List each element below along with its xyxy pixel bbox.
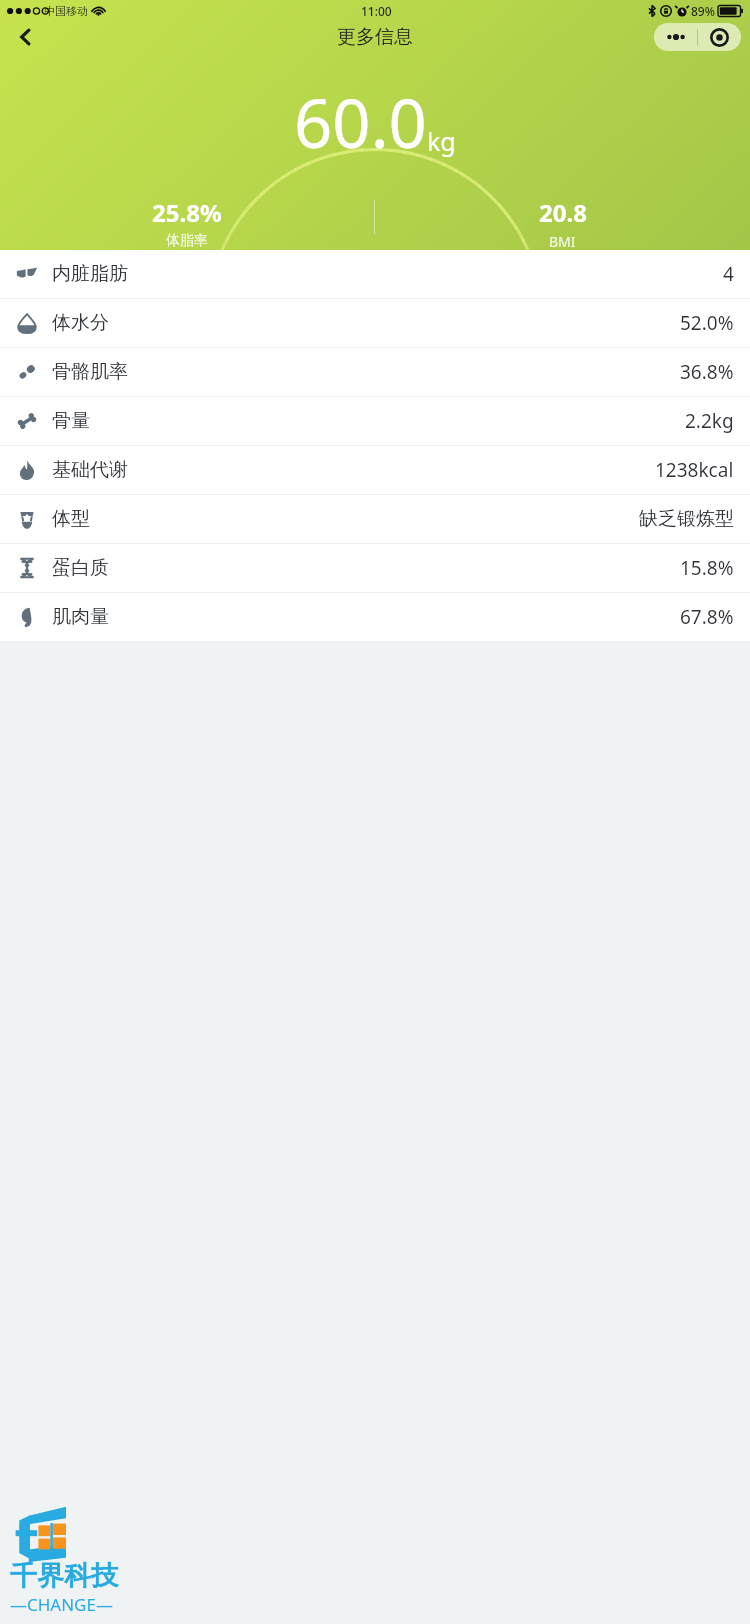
button[interactable]: 体水分 [0, 299, 750, 347]
staticText: 骨量 [52, 409, 90, 433]
button[interactable]: 基础代谢 [0, 446, 750, 494]
staticText: kg [427, 124, 456, 158]
staticText: 2.2kg [685, 408, 734, 434]
button[interactable]: 内脏脂肪 [0, 250, 750, 298]
button[interactable]: 肌肉量 [0, 593, 750, 641]
staticText: 内脏脂肪 [52, 262, 128, 286]
button[interactable]: 骨骼肌率 [0, 348, 750, 396]
staticText: 肌肉量 [52, 605, 109, 629]
staticText: 4 [723, 261, 734, 287]
staticText: BMI [549, 232, 576, 251]
staticText: 千界科技 [10, 1559, 118, 1593]
staticText: 蛋白质 [52, 556, 109, 580]
staticText: 基础代谢 [52, 458, 128, 482]
staticText: 缺乏锻炼型 [639, 507, 734, 531]
staticText: 89% [691, 3, 715, 19]
button[interactable]: 体型 [0, 495, 750, 543]
staticText: 骨骼肌率 [52, 360, 128, 384]
staticText: 体水分 [52, 311, 109, 335]
button[interactable]: Back [6, 21, 46, 52]
staticText: 1238kcal [655, 457, 734, 483]
staticText: 更多信息 [337, 25, 413, 49]
button[interactable]: 骨量 [0, 397, 750, 445]
staticText: 中国移动 [44, 4, 88, 18]
staticText: 25.8% [152, 196, 222, 229]
staticText: 36.8% [680, 359, 734, 385]
button[interactable]: 蛋白质 [0, 544, 750, 592]
staticText: 11:00 [361, 3, 392, 19]
staticText: 体脂率 [166, 232, 208, 250]
button[interactable]: Menu and close [654, 23, 741, 51]
staticText: 60.0 [294, 76, 427, 167]
staticText: 67.8% [680, 604, 734, 630]
staticText: 20.8 [539, 196, 587, 229]
staticText: —CHANGE— [10, 1593, 113, 1616]
staticText: 52.0% [680, 310, 734, 336]
staticText: 体型 [52, 507, 90, 531]
staticText: 15.8% [680, 555, 734, 581]
